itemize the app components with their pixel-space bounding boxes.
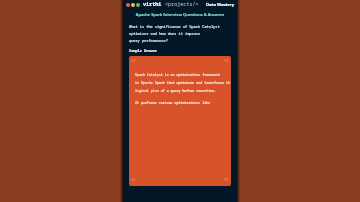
staticText: Spark Catalyst is an optimization framew… bbox=[135, 72, 230, 93]
staticText: “ bbox=[131, 56, 136, 69]
staticText: ” bbox=[224, 175, 229, 186]
button[interactable]: <projects/> bbox=[165, 1, 199, 8]
staticText: Data Mastery bbox=[206, 2, 235, 8]
button[interactable]: Maximize window bbox=[136, 3, 140, 7]
staticText: ” bbox=[224, 56, 229, 69]
staticText: Apache Spark Interview Questions & Answe… bbox=[123, 12, 237, 17]
button[interactable]: Close window bbox=[126, 3, 130, 7]
button[interactable]: virthi bbox=[143, 1, 162, 8]
staticText: What is the significance of Spark Cataly… bbox=[129, 24, 220, 43]
staticText: It performs various optimizations like bbox=[135, 100, 211, 104]
staticText: “ bbox=[131, 175, 136, 186]
staticText: Sample Answer bbox=[129, 48, 158, 53]
button[interactable]: Minimize window bbox=[131, 3, 135, 7]
button[interactable]: “ bbox=[129, 56, 231, 186]
